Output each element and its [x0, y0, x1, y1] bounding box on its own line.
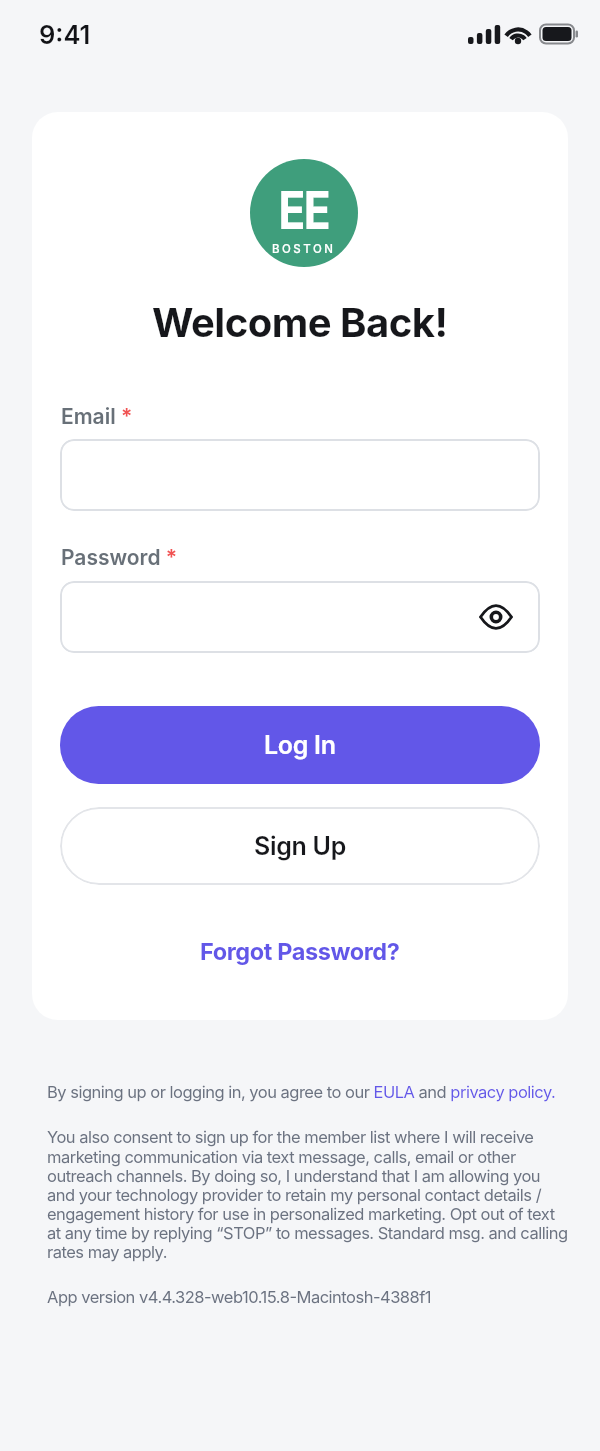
staticText: 9:41: [39, 19, 91, 50]
staticText: App version v4.4.328-web10.15.8-Macintos…: [47, 1287, 432, 1307]
staticText: Welcome Back!: [152, 298, 448, 346]
staticText: You also consent to sign up for the memb…: [47, 1127, 600, 1262]
button[interactable]: Sign Up: [60, 807, 540, 885]
staticText: Sign Up: [254, 831, 346, 861]
staticText: Log In: [264, 730, 336, 760]
button[interactable]: By signing up or logging in, you agree t…: [47, 1078, 592, 1106]
staticText: Password *: [61, 545, 178, 570]
staticText: By signing up or logging in, you agree t…: [47, 1082, 556, 1102]
button[interactable]: [480, 605, 512, 629]
button[interactable]: Log In: [60, 706, 540, 784]
button[interactable]: [60, 581, 540, 653]
button[interactable]: [60, 439, 540, 511]
staticText: BOSTON: [272, 242, 336, 256]
staticText: EE: [278, 179, 329, 242]
staticText: Email *: [61, 404, 133, 429]
button[interactable]: Forgot Password?: [200, 937, 400, 965]
